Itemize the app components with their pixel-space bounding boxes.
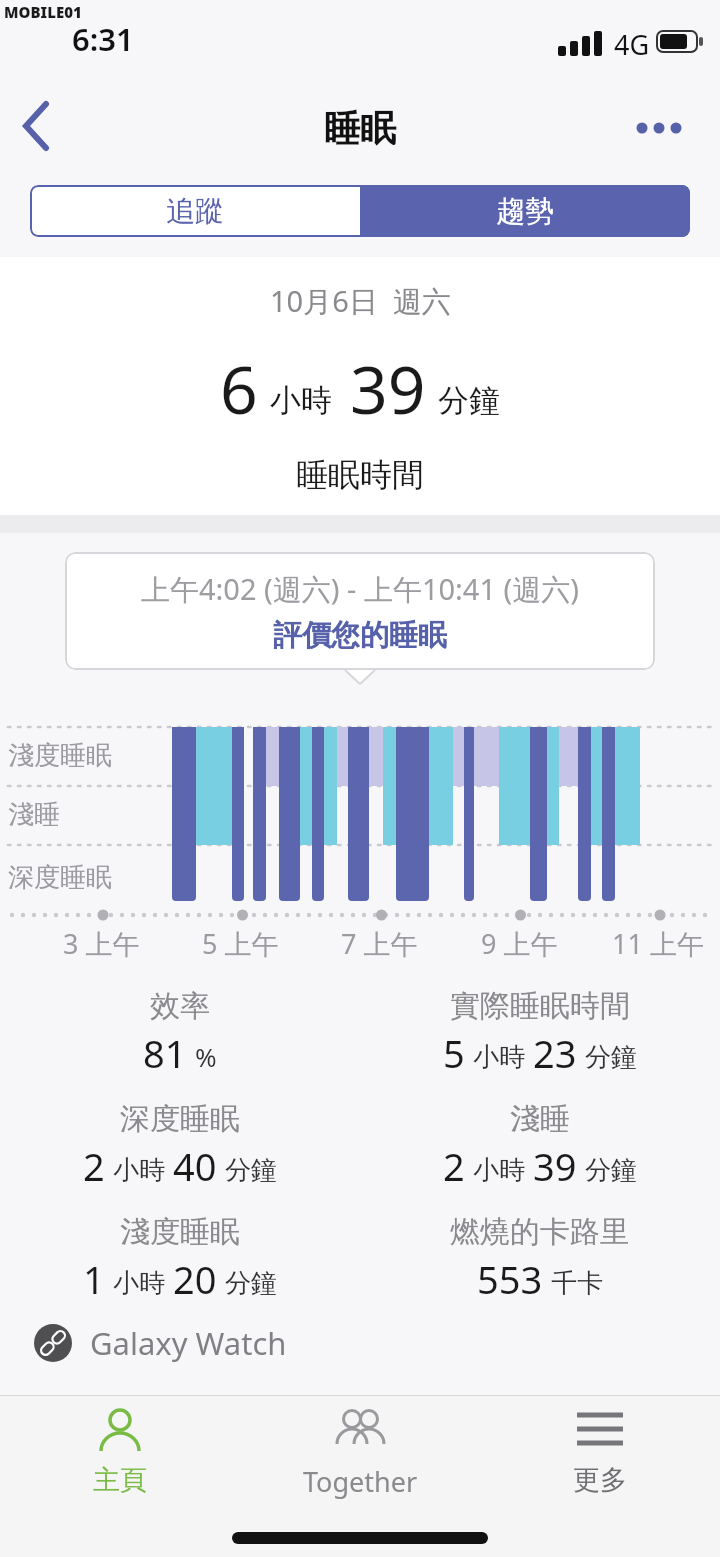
staticText: 5 bbox=[443, 1027, 465, 1079]
button[interactable]: 淺睡 bbox=[360, 1100, 720, 1192]
staticText: 2 bbox=[443, 1140, 465, 1192]
button[interactable]: 燃燒的卡路里 bbox=[360, 1213, 720, 1305]
staticText: 分鐘 bbox=[585, 1154, 637, 1187]
staticText: 39 bbox=[350, 343, 426, 433]
staticText: 小時 bbox=[473, 1041, 525, 1074]
staticText: 6 bbox=[220, 343, 258, 433]
button[interactable]: Galaxy Watch bbox=[34, 1313, 720, 1373]
staticText: 淺度睡眠 bbox=[8, 739, 112, 772]
staticText: 千卡 bbox=[551, 1267, 603, 1300]
staticText: 更多 bbox=[573, 1463, 627, 1497]
staticText: 6:31 bbox=[72, 18, 134, 60]
button[interactable]: 主頁 bbox=[0, 1405, 240, 1497]
staticText: 10月6日 週六 bbox=[270, 281, 451, 321]
staticText: 淺睡 bbox=[510, 1100, 570, 1138]
staticText: 39 bbox=[533, 1140, 577, 1192]
staticText: 9 上午 bbox=[481, 925, 558, 962]
staticText: 分鐘 bbox=[225, 1267, 277, 1300]
staticText: 上午4:02 (週六) - 上午10:41 (週六) bbox=[141, 569, 579, 609]
staticText: % bbox=[195, 1039, 217, 1074]
button[interactable]: 深度睡眠 bbox=[0, 1100, 360, 1192]
button[interactable]: 上午4:02 (週六) - 上午10:41 (週六) bbox=[65, 552, 655, 670]
staticText: Together bbox=[303, 1463, 418, 1500]
button[interactable]: 實際睡眠時間 bbox=[360, 987, 720, 1079]
button[interactable]: Together bbox=[240, 1405, 480, 1500]
staticText: 深度睡眠 bbox=[8, 861, 112, 894]
button[interactable]: 追蹤 bbox=[30, 185, 360, 237]
staticText: 7 上午 bbox=[341, 925, 418, 962]
staticText: 20 bbox=[173, 1253, 217, 1305]
staticText: 81 bbox=[143, 1027, 187, 1079]
button[interactable] bbox=[632, 100, 696, 152]
staticText: 睡眠 bbox=[324, 106, 396, 151]
staticText: 趨勢 bbox=[496, 193, 554, 230]
button[interactable]: 更多 bbox=[480, 1405, 720, 1497]
button[interactable]: 趨勢 bbox=[360, 185, 690, 237]
staticText: 實際睡眠時間 bbox=[450, 987, 630, 1025]
staticText: 淺度睡眠 bbox=[120, 1213, 240, 1251]
staticText: 分鐘 bbox=[585, 1041, 637, 1074]
staticText: 分鐘 bbox=[438, 381, 500, 420]
staticText: 評價您的睡眠 bbox=[273, 617, 447, 654]
staticText: 23 bbox=[533, 1027, 577, 1079]
staticText: 淺睡 bbox=[8, 798, 60, 831]
staticText: Galaxy Watch bbox=[90, 1322, 287, 1364]
staticText: 3 上午 bbox=[63, 925, 140, 962]
staticText: 1 bbox=[83, 1253, 105, 1305]
staticText: 2 bbox=[83, 1140, 105, 1192]
staticText: 睡眠時間 bbox=[296, 455, 424, 495]
button[interactable] bbox=[8, 96, 68, 156]
staticText: 4G bbox=[614, 26, 650, 63]
staticText: 小時 bbox=[473, 1154, 525, 1187]
staticText: 5 上午 bbox=[202, 925, 279, 962]
button[interactable]: 淺度睡眠 bbox=[0, 1213, 360, 1305]
staticText: 小時 bbox=[270, 381, 332, 420]
staticText: 小時 bbox=[113, 1154, 165, 1187]
staticText: 40 bbox=[173, 1140, 217, 1192]
staticText: 分鐘 bbox=[225, 1154, 277, 1187]
staticText: MOBILE01 bbox=[4, 2, 82, 22]
staticText: 深度睡眠 bbox=[120, 1100, 240, 1138]
staticText: 燃燒的卡路里 bbox=[450, 1213, 630, 1251]
staticText: 小時 bbox=[113, 1267, 165, 1300]
staticText: 11 上午 bbox=[612, 925, 704, 962]
staticText: 主頁 bbox=[93, 1463, 147, 1497]
staticText: 追蹤 bbox=[166, 193, 224, 230]
button[interactable]: 效率 bbox=[0, 987, 360, 1079]
staticText: 553 bbox=[477, 1253, 543, 1305]
staticText: 效率 bbox=[150, 987, 210, 1025]
